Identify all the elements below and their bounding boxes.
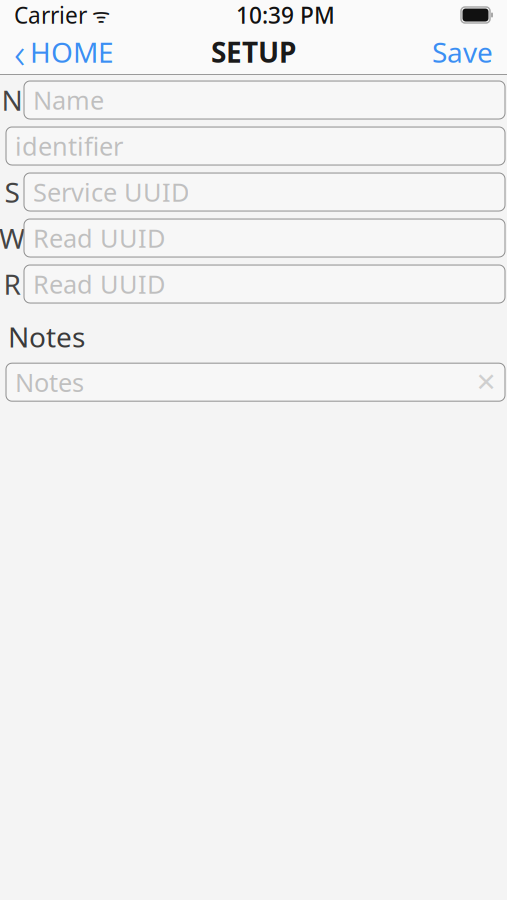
staticText: Service UUID [33,175,189,209]
staticText: Carrier [14,0,87,30]
staticText: ‹ [14,24,25,80]
staticText: HOME [30,33,114,71]
staticText: 10:39 PM [236,0,335,30]
button[interactable]: ‹ [0,30,124,74]
staticText: R [3,265,20,303]
staticText: Notes [8,318,85,355]
staticText: identifier [15,129,123,163]
staticText: Read UUID [33,221,165,255]
staticText: ✕ [475,368,496,397]
button[interactable]: Name [24,81,505,119]
button[interactable]: Read UUID [24,219,505,257]
button[interactable]: Service UUID [24,173,505,211]
staticText: Save [432,33,493,71]
staticText: N [1,81,22,119]
staticText: ᯤ [87,2,110,28]
staticText: S [4,173,19,211]
staticText: W [0,219,25,257]
button[interactable]: identifier [6,127,505,165]
button[interactable]: Notes [6,363,505,401]
staticText: Read UUID [33,267,165,301]
button[interactable]: Save [422,30,507,74]
staticText: Name [33,83,104,117]
staticText: SETUP [211,33,296,71]
staticText: Notes [15,365,84,399]
button[interactable]: Read UUID [24,265,505,303]
